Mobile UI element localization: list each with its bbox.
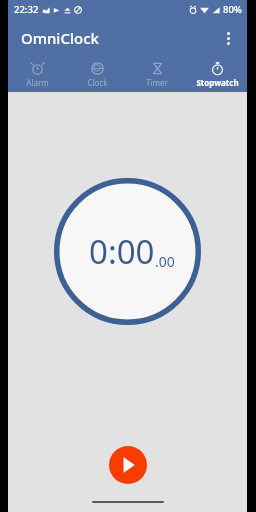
button[interactable]: Alarm xyxy=(8,57,67,92)
staticText: Timer xyxy=(146,77,168,88)
staticText: 0:00 xyxy=(89,229,155,274)
button[interactable]: Clock xyxy=(67,57,127,92)
button[interactable]: 0:00 xyxy=(54,178,201,325)
button[interactable]: Timer xyxy=(127,57,187,92)
staticText: 80% xyxy=(223,3,242,16)
button[interactable]: Start xyxy=(109,446,147,484)
staticText: OmniClock xyxy=(21,28,99,48)
button[interactable]: Stopwatch xyxy=(187,57,247,92)
staticText: .00 xyxy=(155,252,175,271)
staticText: Stopwatch xyxy=(196,77,239,88)
button[interactable]: More options xyxy=(212,22,244,54)
staticText: 22:32 xyxy=(14,3,39,16)
staticText: Alarm xyxy=(26,77,49,88)
staticText: Clock xyxy=(87,77,108,88)
